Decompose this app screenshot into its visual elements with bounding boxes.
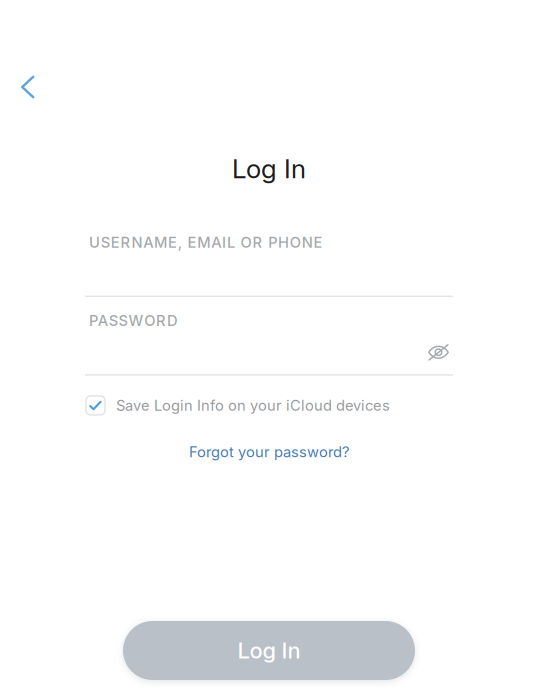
- button[interactable]: Show password: [424, 340, 453, 365]
- staticText: PASSWORD: [89, 312, 178, 329]
- button[interactable]: PASSWORD: [85, 297, 453, 375]
- button[interactable]: Log In: [123, 621, 415, 680]
- button[interactable]: Back: [0, 0, 54, 114]
- staticText: Log In: [232, 153, 306, 184]
- staticText: Forgot your password?: [189, 443, 349, 461]
- staticText: Save Login Info on your iCloud devices: [116, 397, 390, 414]
- button[interactable]: USERNAME, EMAIL OR PHONE: [85, 221, 453, 297]
- staticText: USERNAME, EMAIL OR PHONE: [89, 233, 322, 251]
- button[interactable]: Save Login Info on your iCloud devices: [0, 375, 538, 415]
- staticText: Log In: [237, 637, 300, 664]
- button[interactable]: Forgot your password?: [0, 415, 538, 467]
